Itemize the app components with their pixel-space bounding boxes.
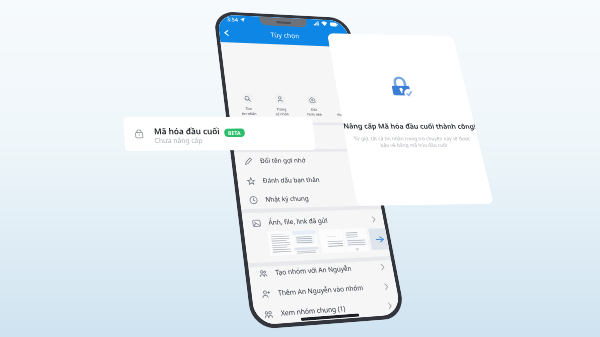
staticText: Đổi hình nền xyxy=(113,143,134,156)
button[interactable]: Tắt thông báo xyxy=(149,124,187,156)
staticText: Tắt thông báo xyxy=(156,143,181,156)
button[interactable]: Đổi hình nền xyxy=(104,124,142,156)
staticText: Nâng cấp Mã hóa đầu cuối thành công! xyxy=(0,128,180,141)
staticText: Từ giờ, tất cả tin nhắn trong trò chuyện… xyxy=(6,147,174,165)
